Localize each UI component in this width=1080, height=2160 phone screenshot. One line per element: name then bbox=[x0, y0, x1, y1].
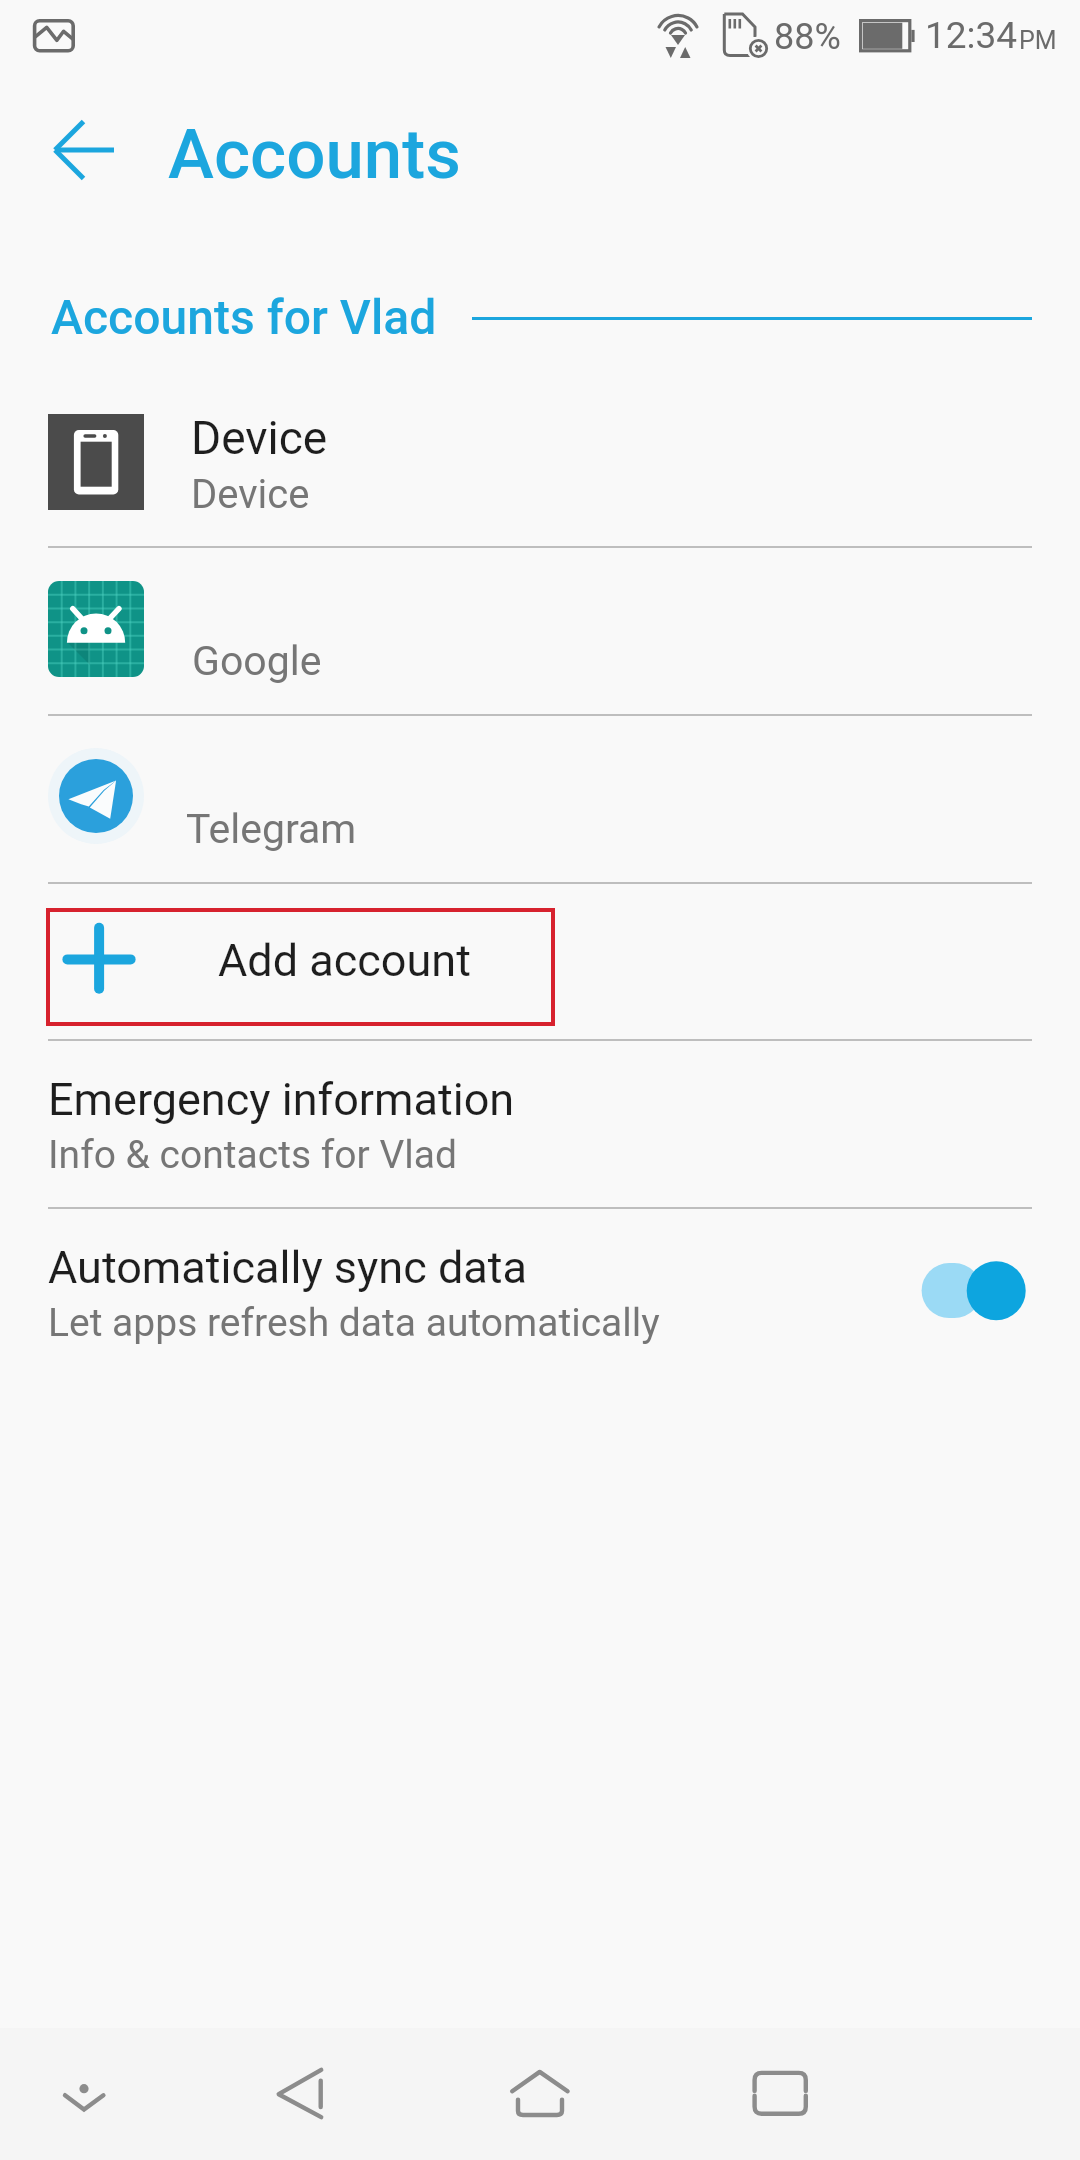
staticText: Device bbox=[191, 411, 328, 465]
button[interactable]: Automatically sync data bbox=[908, 1254, 1032, 1328]
button[interactable]: Telegram bbox=[0, 714, 1080, 882]
button[interactable]: Home bbox=[430, 2028, 650, 2160]
staticText: Add account bbox=[218, 934, 471, 987]
staticText: Automatically sync data bbox=[48, 1241, 527, 1294]
button[interactable]: Back bbox=[180, 2028, 420, 2160]
staticText: Emergency information bbox=[48, 1073, 515, 1126]
staticText: Google bbox=[192, 637, 322, 685]
button[interactable]: Automatically sync data bbox=[0, 1207, 1080, 1375]
button[interactable]: Add account bbox=[46, 908, 555, 1026]
button[interactable]: Device bbox=[0, 380, 1080, 546]
staticText: Accounts bbox=[168, 114, 461, 195]
staticText: Let apps refresh data automatically bbox=[48, 1300, 660, 1346]
staticText: PM bbox=[1019, 26, 1057, 55]
staticText: 88% bbox=[774, 16, 841, 58]
button[interactable]: Recent apps bbox=[700, 2028, 920, 2160]
button[interactable]: Hide navigation bar bbox=[0, 2028, 168, 2160]
button[interactable]: Google bbox=[0, 546, 1080, 714]
button[interactable]: Emergency information bbox=[0, 1039, 1080, 1207]
staticText: Device bbox=[191, 471, 310, 518]
staticText: 12:34 bbox=[925, 14, 1018, 57]
button[interactable]: Back bbox=[26, 102, 122, 198]
staticText: Telegram bbox=[186, 805, 357, 853]
staticText: Accounts for Vlad bbox=[51, 289, 437, 345]
staticText: Info & contacts for Vlad bbox=[48, 1132, 457, 1178]
